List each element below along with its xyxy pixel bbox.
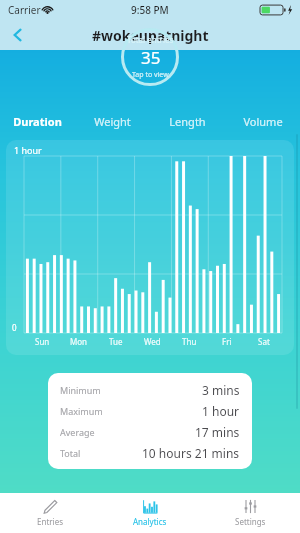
staticText: Carrier: [8, 3, 41, 17]
staticText: Minimum: [60, 384, 101, 396]
staticText: Total: [60, 447, 81, 459]
button[interactable]: Total: [60, 442, 240, 463]
button[interactable]: Maximum: [60, 400, 240, 421]
staticText: Volume: [243, 114, 283, 129]
staticText: Duration: [13, 114, 62, 129]
staticText: Wed: [144, 336, 161, 347]
staticText: 1 hour: [202, 403, 240, 419]
staticText: Length: [169, 114, 206, 129]
staticText: Average: [60, 426, 95, 438]
staticText: Analytics: [133, 516, 167, 527]
button[interactable]: Weight: [75, 108, 150, 134]
button[interactable]: Back: [0, 20, 36, 50]
staticText: Settings: [235, 516, 266, 527]
staticText: 0: [12, 322, 17, 333]
button[interactable]: Minimum: [60, 379, 240, 400]
button[interactable]: Duration: [0, 108, 75, 134]
button[interactable]: Entries: [0, 493, 100, 533]
staticText: 1 hour: [14, 144, 42, 156]
staticText: Fri: [222, 336, 232, 347]
staticText: Thu: [182, 336, 197, 347]
staticText: Sat: [258, 336, 270, 347]
staticText: 17 mins: [195, 424, 240, 440]
staticText: #wokeupatnight: [92, 26, 209, 45]
staticText: 35: [141, 46, 161, 69]
button[interactable]: Total entries, tap to view: [110, 28, 190, 86]
staticText: 10 hours 21 mins: [142, 445, 240, 461]
staticText: Weight: [94, 114, 131, 129]
staticText: Maximum: [60, 405, 103, 417]
staticText: Total entries: [127, 34, 174, 45]
button[interactable]: Average: [60, 421, 240, 442]
staticText: Entries: [37, 516, 63, 527]
staticText: Mon: [70, 336, 88, 347]
staticText: 3 mins: [202, 382, 240, 398]
staticText: Sun: [35, 336, 50, 347]
button[interactable]: Analytics: [100, 493, 200, 533]
button[interactable]: Settings: [200, 493, 300, 533]
button[interactable]: Length: [150, 108, 225, 134]
staticText: Tap to view: [132, 70, 169, 80]
staticText: Tue: [109, 336, 123, 347]
staticText: 9:58 PM: [131, 3, 169, 17]
button[interactable]: Volume: [225, 108, 300, 134]
